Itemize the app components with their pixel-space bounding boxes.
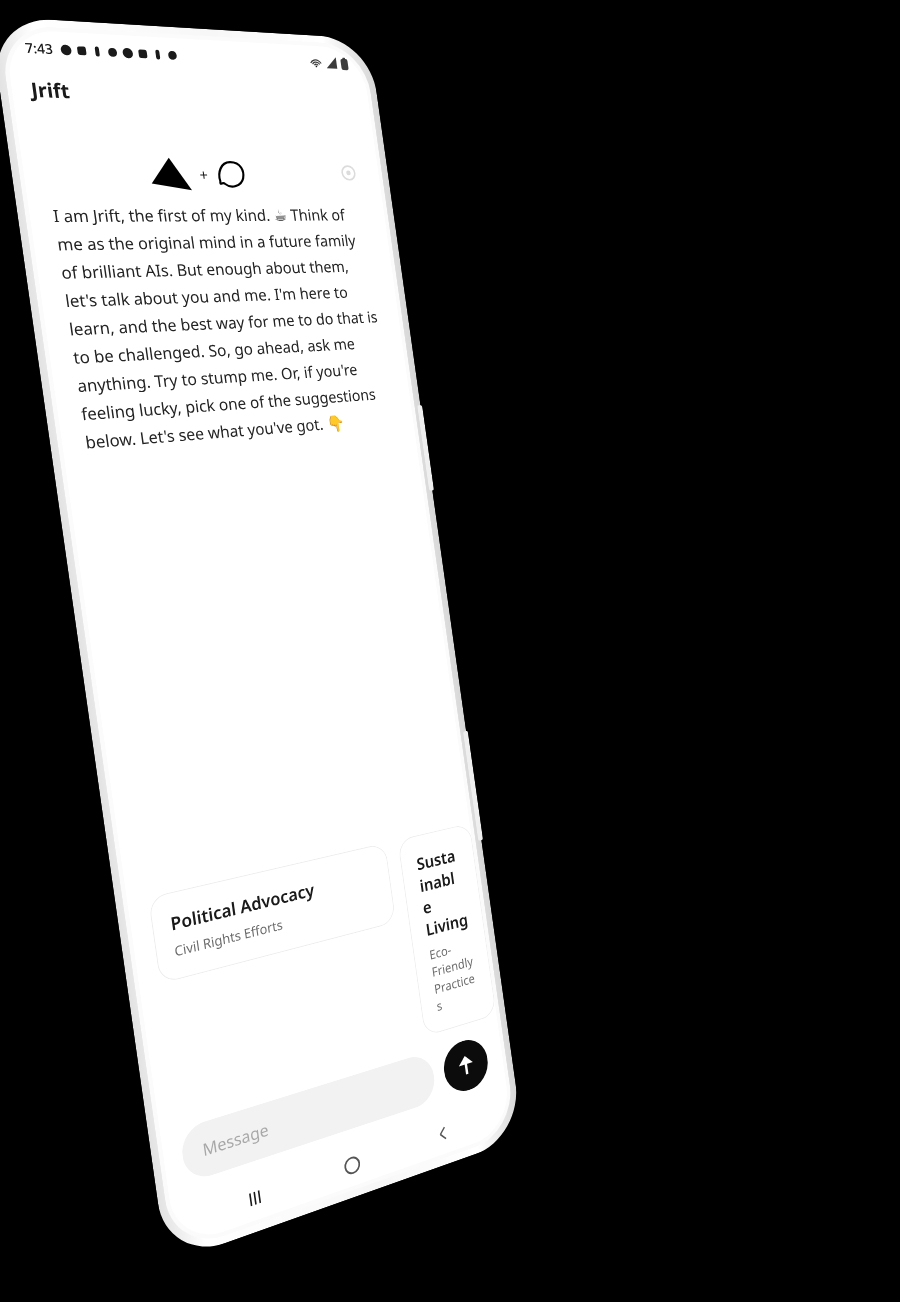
staticText: 7:43	[24, 38, 54, 58]
button[interactable]: Message	[179, 1051, 437, 1184]
staticText: Message	[201, 1118, 270, 1161]
button[interactable]: Political Advocacy	[148, 843, 396, 984]
staticText: Sustainable Living	[415, 843, 469, 941]
staticText: I am Jrift, the first of my kind. ☕ Thin…	[52, 204, 396, 454]
staticText: Political Advocacy	[169, 878, 316, 936]
button[interactable]: Settings	[335, 160, 361, 185]
button[interactable]: Recent apps	[230, 1170, 279, 1227]
button[interactable]: Back	[421, 1107, 464, 1160]
button[interactable]: Home	[329, 1138, 374, 1193]
staticText: Eco-Friendly Practices	[428, 935, 480, 1015]
staticText: Civil Rights Efforts	[173, 915, 284, 961]
staticText: Jrift	[29, 76, 72, 104]
button[interactable]: Send	[441, 1034, 491, 1097]
staticText: +	[198, 164, 209, 184]
button[interactable]: Sustainable Living	[397, 823, 497, 1037]
